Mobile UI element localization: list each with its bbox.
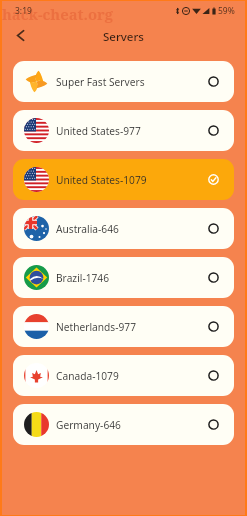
button[interactable]: United States-977 — [13, 110, 234, 151]
button[interactable]: Canada-1079 — [13, 355, 234, 396]
button[interactable]: Brazil-1746 — [13, 257, 234, 298]
staticText: Servers — [103, 29, 144, 45]
staticText: Netherlands-977 — [56, 320, 136, 334]
button[interactable]: United States-1079 — [13, 159, 234, 200]
staticText: United States-1079 — [56, 173, 147, 187]
staticText: Brazil-1746 — [56, 271, 109, 285]
staticText: Super Fast Servers — [56, 75, 145, 89]
staticText: Canada-1079 — [56, 369, 119, 383]
staticText: Germany-646 — [56, 418, 121, 432]
button[interactable]: Australia-646 — [13, 208, 234, 249]
button[interactable]: Germany-646 — [13, 404, 234, 445]
button[interactable]: Back — [8, 23, 32, 47]
button[interactable]: Netherlands-977 — [13, 306, 234, 347]
staticText: Australia-646 — [56, 222, 119, 236]
staticText: hack-cheat.org — [2, 4, 114, 24]
staticText: 59% — [218, 5, 235, 17]
button[interactable]: Super Fast Servers — [13, 61, 234, 102]
staticText: United States-977 — [56, 124, 141, 138]
staticText: 3:19 — [15, 5, 32, 17]
